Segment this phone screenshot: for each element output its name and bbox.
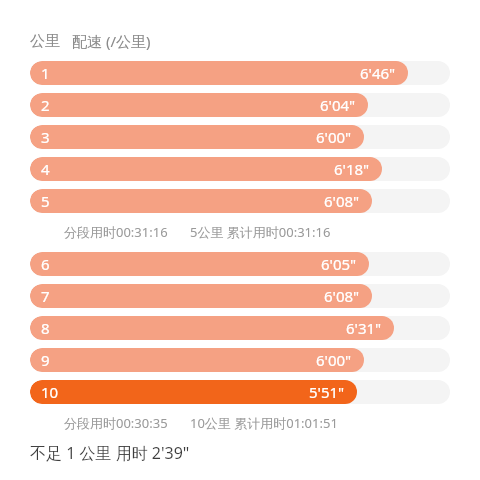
- staticText: 6'00": [316, 127, 352, 147]
- staticText: 6: [41, 254, 50, 274]
- button[interactable]: 9: [30, 348, 450, 372]
- staticText: 分段用时00:30:35: [64, 414, 168, 432]
- staticText: 2: [41, 95, 50, 115]
- staticText: 6'08": [324, 286, 360, 306]
- button[interactable]: 2: [30, 93, 450, 117]
- staticText: 5'51": [309, 382, 345, 402]
- staticText: 5公里 累计用时00:31:16: [190, 223, 331, 241]
- button[interactable]: 不足 1 公里 用时 2'39": [0, 442, 480, 464]
- staticText: 6'05": [321, 254, 357, 274]
- staticText: 5: [41, 191, 50, 211]
- staticText: 6'46": [360, 63, 396, 83]
- button[interactable]: 分段用时00:30:35: [0, 412, 480, 434]
- staticText: 6'04": [320, 95, 356, 115]
- staticText: 6'00": [316, 350, 352, 370]
- staticText: 3: [41, 127, 50, 147]
- staticText: 6'18": [334, 159, 370, 179]
- staticText: 配速 (/公里): [72, 31, 151, 51]
- button[interactable]: 6: [30, 252, 450, 276]
- staticText: 分段用时00:31:16: [64, 223, 168, 241]
- button[interactable]: 3: [30, 125, 450, 149]
- staticText: 6'08": [324, 191, 360, 211]
- button[interactable]: 8: [30, 316, 450, 340]
- button[interactable]: 分段用时00:31:16: [0, 221, 480, 243]
- button[interactable]: 4: [30, 157, 450, 181]
- staticText: 9: [41, 350, 50, 370]
- staticText: 4: [41, 159, 50, 179]
- staticText: 6'31": [346, 318, 382, 338]
- button[interactable]: 1: [30, 61, 450, 85]
- staticText: 1: [41, 63, 50, 83]
- button[interactable]: 7: [30, 284, 450, 308]
- staticText: 公里: [30, 32, 60, 51]
- button[interactable]: 5: [30, 189, 450, 213]
- staticText: 不足 1 公里 用时 2'39": [30, 442, 190, 464]
- staticText: 10公里 累计用时01:01:51: [190, 414, 338, 432]
- staticText: 8: [41, 318, 50, 338]
- staticText: 7: [41, 286, 50, 306]
- staticText: 10: [41, 382, 59, 402]
- button[interactable]: 10: [30, 380, 450, 404]
